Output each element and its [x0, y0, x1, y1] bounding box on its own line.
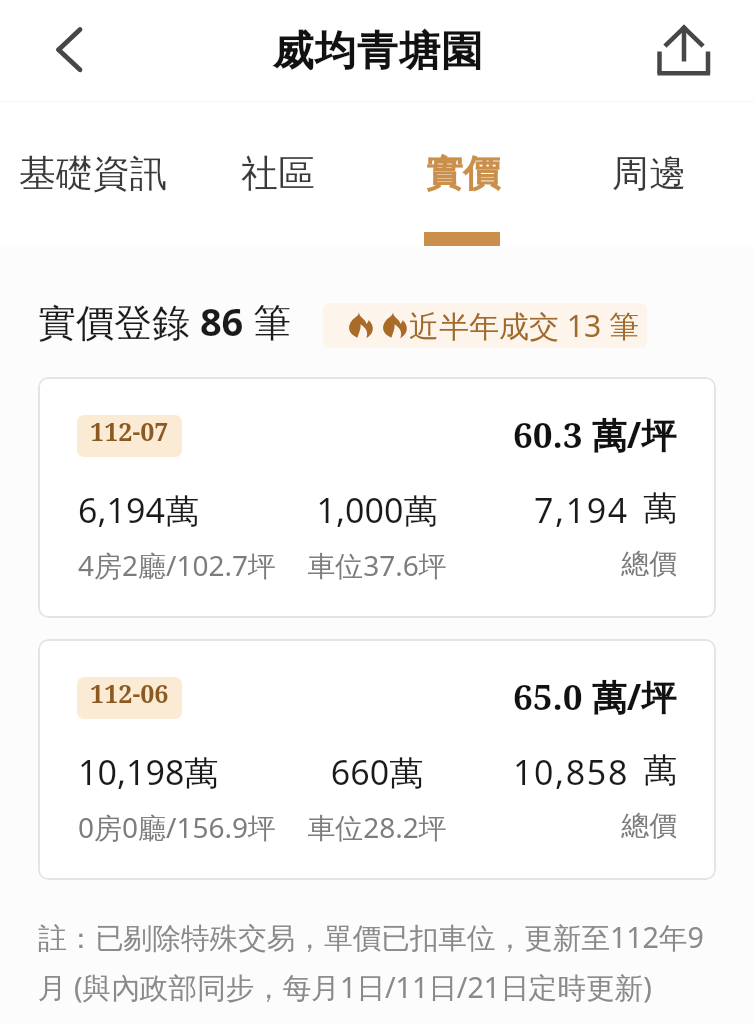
button[interactable]: 周邊 — [556, 102, 742, 247]
staticText: 總價 — [477, 546, 677, 581]
staticText: 112-07 — [90, 415, 169, 448]
staticText: 基礎資訊 — [19, 150, 167, 197]
staticText: 萬 — [643, 487, 677, 530]
staticText: 社區 — [241, 150, 315, 197]
staticText: 威均青塘園 — [272, 26, 483, 78]
staticText: 10,198萬 — [78, 749, 277, 795]
staticText: 實價 — [426, 150, 500, 197]
staticText: 車位28.2坪 — [277, 808, 477, 846]
staticText: 660萬 — [277, 749, 477, 795]
button[interactable]: 112-06 — [38, 639, 716, 880]
staticText: 萬 — [643, 749, 677, 792]
button[interactable]: 基礎資訊 — [0, 102, 185, 247]
staticText: 周邊 — [612, 150, 686, 197]
staticText: 實價登錄 86 筆 — [38, 295, 292, 343]
staticText: 112-06 — [90, 677, 169, 710]
staticText: 0房0廳/156.9坪 — [78, 808, 277, 846]
staticText: 總價 — [477, 808, 677, 843]
staticText: 註：已剔除特殊交易，單價已扣車位，更新至112年9月 (與內政部同步，每月1日/… — [38, 917, 714, 1006]
button[interactable]: Share — [650, 16, 720, 86]
staticText: 7,194 — [534, 487, 629, 533]
button[interactable]: 社區 — [185, 102, 370, 247]
button[interactable]: Back — [34, 16, 104, 86]
staticText: 10,858 — [513, 749, 629, 795]
staticText: 4房2廳/102.7坪 — [78, 546, 277, 584]
staticText: 6,194萬 — [78, 487, 277, 533]
button[interactable]: 112-07 — [38, 377, 716, 618]
staticText: 車位37.6坪 — [277, 546, 477, 584]
button[interactable]: 實價 — [370, 102, 556, 247]
staticText: 近半年成交 13 筆 — [409, 305, 639, 346]
staticText: 1,000萬 — [277, 487, 477, 533]
staticText: 60.3 萬/坪 — [513, 411, 677, 459]
staticText: 65.0 萬/坪 — [513, 673, 677, 721]
